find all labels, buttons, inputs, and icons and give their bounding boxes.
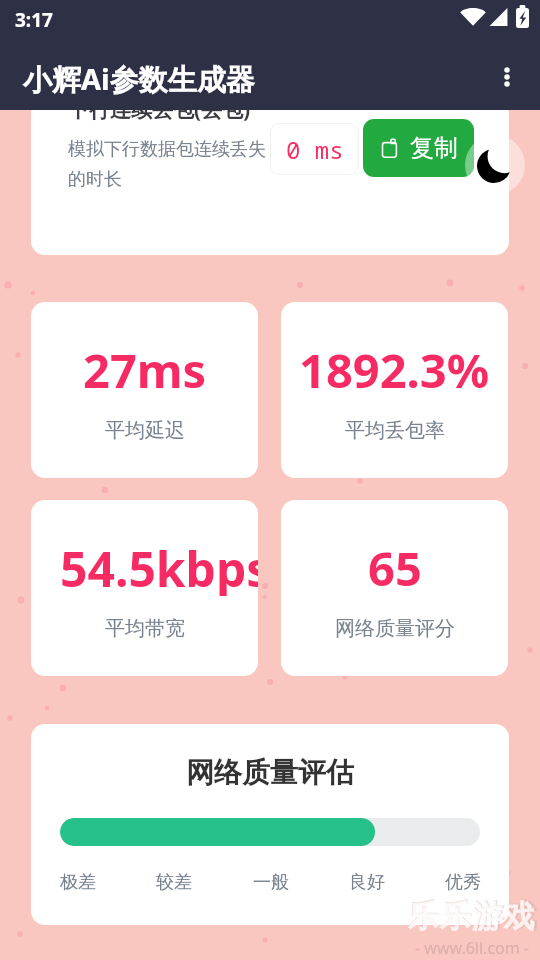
button[interactable]: 54.5kbps	[31, 500, 258, 676]
button[interactable]: 1892.3%	[281, 302, 508, 478]
button[interactable]: Toggle dark mode	[465, 135, 525, 195]
staticText: 网络质量评分	[335, 616, 455, 641]
staticText: 下行连续丢包(丢包)	[68, 95, 251, 124]
button[interactable]: 复制	[363, 119, 474, 177]
staticText: 平均丢包率	[345, 418, 445, 443]
staticText: 3:17	[15, 7, 53, 33]
staticText: 乐乐游戏	[406, 896, 538, 936]
button[interactable]: 27ms	[31, 302, 258, 478]
staticText: 一般	[253, 871, 289, 894]
staticText: 优秀	[445, 871, 481, 894]
staticText: 54.5kbps	[60, 536, 258, 596]
button[interactable]: 0 ms	[270, 123, 359, 175]
staticText: 较差	[156, 871, 192, 894]
button[interactable]: 65	[281, 500, 508, 676]
button[interactable]: 网络质量评估	[31, 724, 509, 925]
button[interactable]: More options	[484, 54, 530, 100]
button[interactable]	[31, 100, 509, 255]
staticText: 平均延迟	[105, 418, 185, 443]
staticText: 复制	[410, 133, 458, 163]
staticText: - www.6ll.com -	[415, 937, 530, 959]
staticText: 27ms	[83, 338, 207, 398]
staticText: 网络质量评估	[31, 755, 509, 790]
staticText: 小辉Ai参数生成器	[23, 59, 255, 99]
staticText: 0 ms	[286, 133, 344, 166]
staticText: 乐乐游戏	[407, 897, 535, 936]
staticText: 1892.3%	[299, 338, 490, 398]
staticText: 良好	[349, 871, 385, 894]
staticText: 极差	[60, 871, 96, 894]
staticText: 平均带宽	[105, 616, 185, 641]
staticText: 65	[368, 536, 422, 596]
staticText: 模拟下行数据包连续丢失的时长	[68, 138, 276, 191]
